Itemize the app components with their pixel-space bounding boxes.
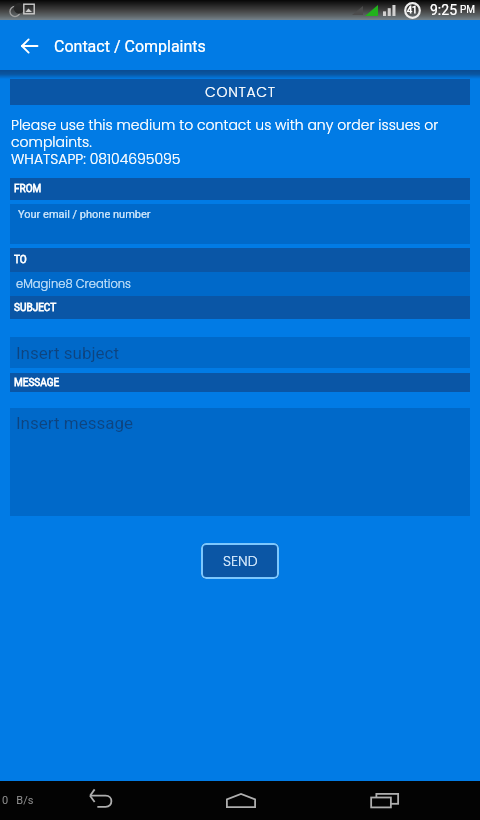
button[interactable]: Insert subject (10, 337, 470, 368)
staticText: SUBJECT (14, 302, 57, 314)
staticText: Your email / phone number (18, 208, 151, 221)
staticText: TO (14, 254, 27, 266)
staticText: Please use this medium to contact us wit… (11, 115, 474, 169)
button[interactable]: Back (0, 20, 55, 70)
staticText: eMagine8 Creations (16, 276, 131, 292)
staticText: CONTACT (205, 82, 276, 102)
staticText: Insert subject (16, 343, 119, 363)
button[interactable]: Recent apps (358, 781, 410, 820)
staticText: FROM (14, 183, 42, 195)
staticText: 9:25 (430, 2, 457, 18)
staticText: SEND (223, 551, 258, 571)
staticText: 41 (407, 5, 418, 16)
staticText: MESSAGE (14, 377, 60, 389)
button[interactable]: Insert message (10, 408, 470, 516)
button[interactable]: Your email / phone number (10, 204, 470, 244)
staticText: 0 B/s (2, 794, 34, 807)
button[interactable]: SEND (201, 543, 279, 579)
button[interactable]: eMagine8 Creations (10, 272, 470, 296)
staticText: PM (460, 4, 476, 16)
staticText: Contact / Complaints (54, 37, 206, 56)
button[interactable]: Home (215, 781, 267, 820)
staticText: Insert message (16, 413, 134, 433)
button[interactable]: Back (73, 781, 125, 820)
